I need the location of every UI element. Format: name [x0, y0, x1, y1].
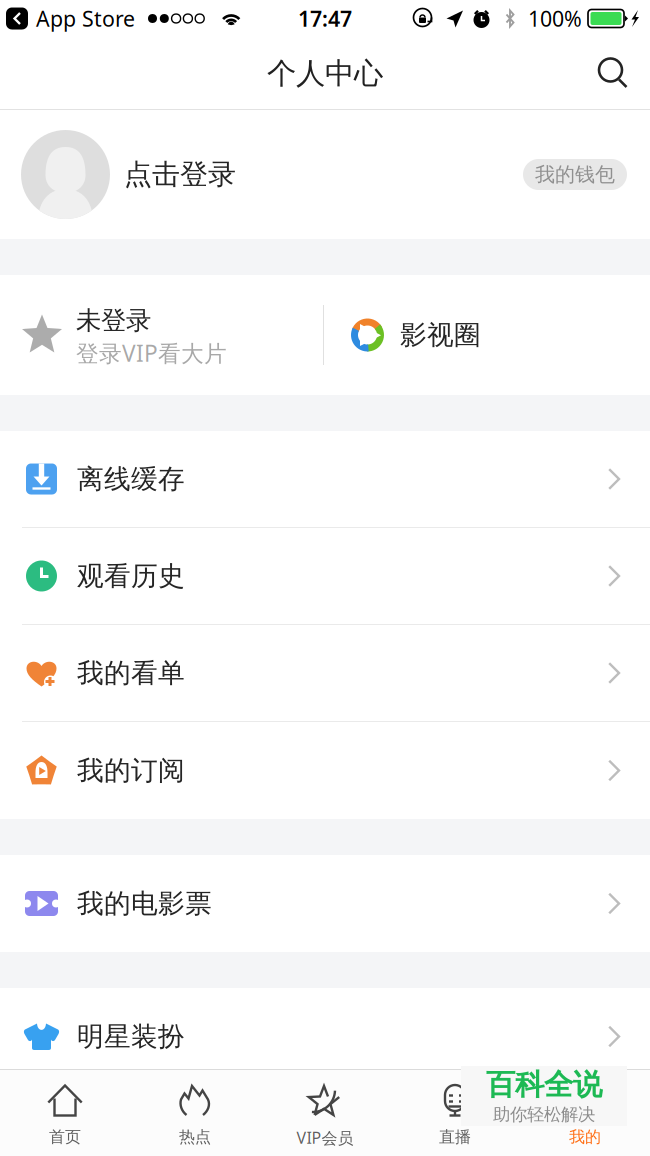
button[interactable]: 我的 — [520, 1069, 650, 1156]
staticText: 热点 — [179, 1127, 211, 1147]
staticText: 百科全说 — [486, 1067, 602, 1103]
button[interactable]: 影视圈 — [323, 275, 650, 395]
staticText: 登录VIP看大片 — [76, 338, 227, 368]
staticText: 首页 — [49, 1127, 81, 1147]
staticText: 100% — [528, 4, 582, 33]
staticText: 影视圈 — [400, 319, 481, 351]
button[interactable]: 我的看单 — [0, 625, 650, 722]
staticText: 离线缓存 — [77, 463, 185, 495]
button[interactable]: 首页 — [0, 1069, 130, 1156]
button[interactable]: 我的电影票 — [0, 855, 650, 952]
button[interactable]: 未登录 — [0, 275, 323, 395]
button[interactable]: 直播 — [390, 1069, 520, 1156]
staticText: 17:47 — [298, 4, 352, 33]
staticText: 我的订阅 — [77, 754, 185, 787]
staticText: 我的 — [569, 1127, 601, 1147]
button[interactable]: 我的订阅 — [0, 722, 650, 819]
button[interactable]: 点击登录 — [0, 110, 650, 239]
button[interactable]: 观看历史 — [0, 528, 650, 625]
staticText: 我的电影票 — [77, 887, 212, 920]
staticText: 个人中心 — [267, 55, 383, 91]
staticText: 点击登录 — [124, 157, 236, 192]
staticText: 我的钱包 — [535, 162, 615, 187]
staticText: App Store — [36, 4, 135, 33]
button[interactable]: 搜索 — [584, 40, 642, 106]
staticText: 未登录 — [76, 305, 151, 336]
button[interactable]: 离线缓存 — [0, 431, 650, 528]
staticText: 观看历史 — [77, 560, 185, 592]
staticText: 直播 — [439, 1127, 471, 1147]
staticText: VIP会员 — [296, 1127, 353, 1148]
button[interactable]: VIP会员 — [260, 1069, 390, 1156]
button[interactable]: 热点 — [130, 1069, 260, 1156]
button[interactable]: 明星装扮 — [0, 988, 650, 1085]
staticText: 我的看单 — [77, 657, 185, 689]
staticText: 助你轻松解决 — [493, 1104, 595, 1125]
staticText: 明星装扮 — [77, 1020, 185, 1053]
